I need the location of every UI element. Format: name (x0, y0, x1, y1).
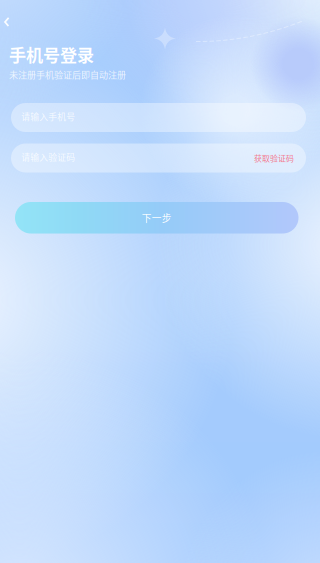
button[interactable]: 获取验证码 (248, 147, 300, 169)
button[interactable]: 下一步 (15, 202, 298, 233)
staticText: 获取验证码 (254, 152, 294, 164)
staticText: 请输入手机号 (21, 110, 75, 123)
staticText: 未注册手机验证后即自动注册 (9, 68, 126, 81)
staticText: 请输入验证码 (21, 150, 75, 163)
staticText: 手机号登录 (9, 42, 94, 67)
staticText: 下一步 (142, 211, 172, 225)
button[interactable]: Back (0, 0, 34, 44)
